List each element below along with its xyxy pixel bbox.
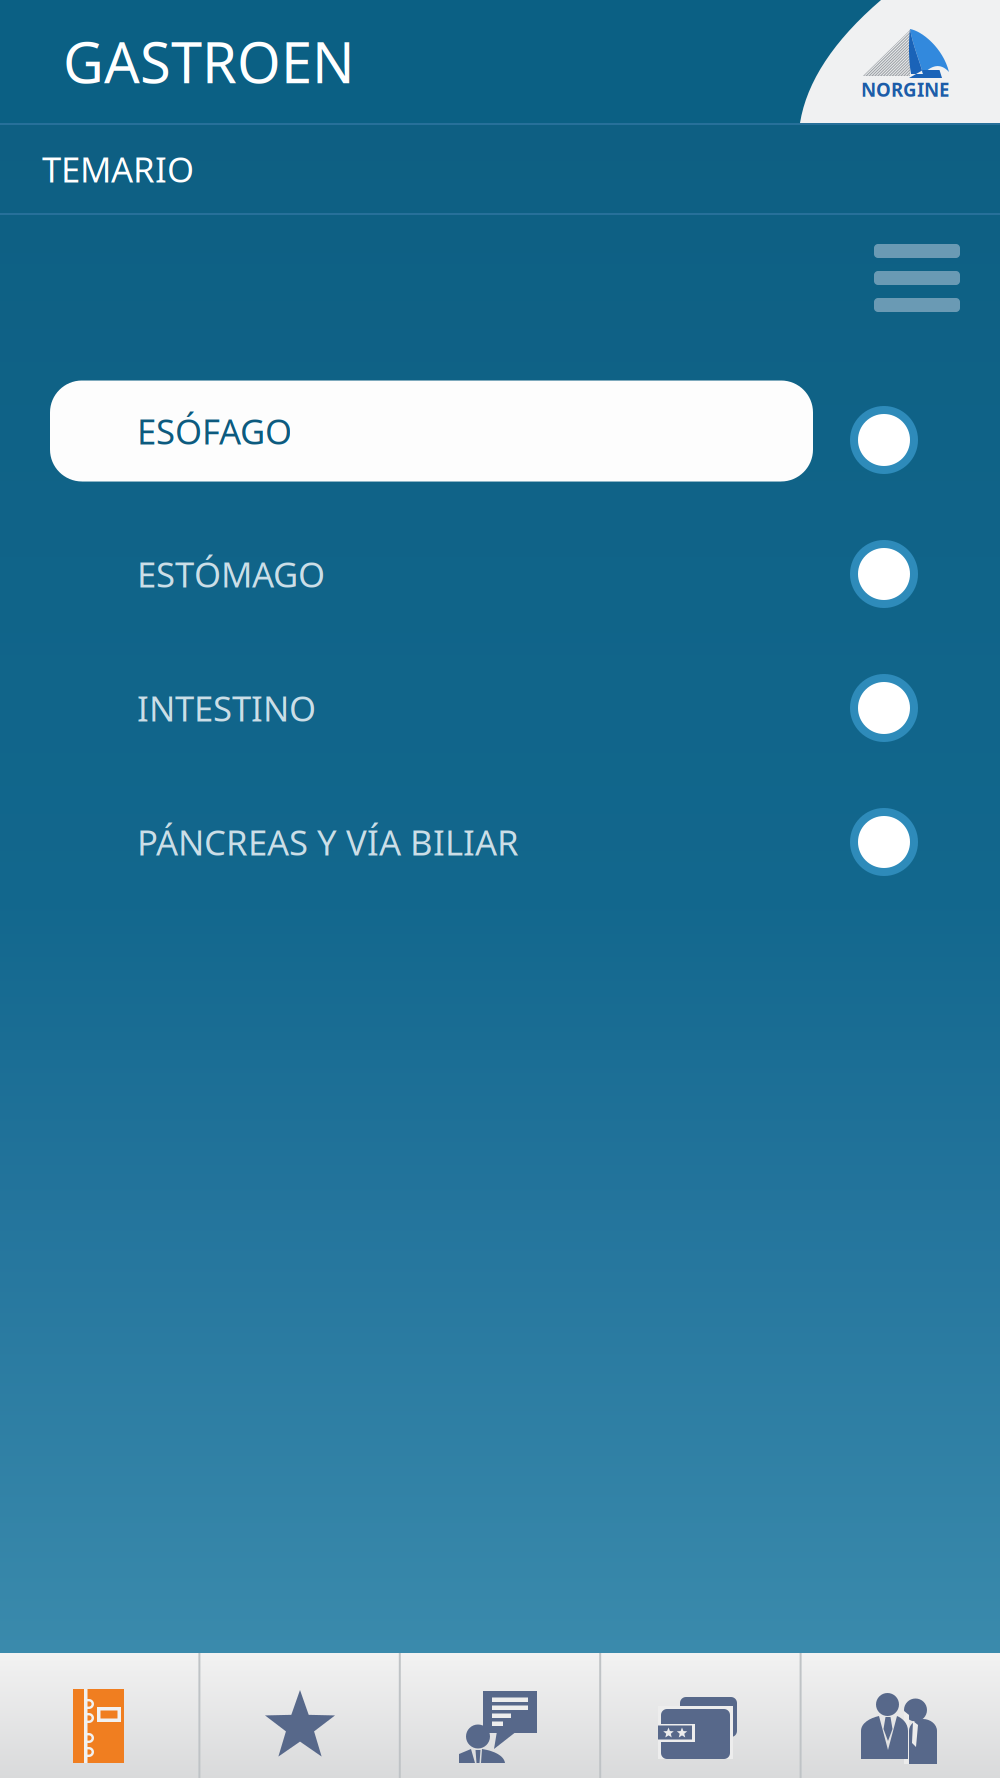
button[interactable]: ESÓFAGO (0, 373, 1000, 507)
button[interactable]: Temario (0, 1653, 200, 1778)
button[interactable]: Contactos (800, 1653, 1000, 1778)
button[interactable]: Tarjetas (600, 1653, 800, 1778)
button[interactable]: Favoritos (200, 1653, 400, 1778)
staticText: ESÓFAGO (137, 408, 292, 454)
staticText: NORGINE (861, 77, 949, 102)
staticText: PÁNCREAS Y VÍA BILIAR (137, 819, 519, 865)
button[interactable]: ESTÓMAGO (0, 507, 1000, 641)
staticText: ESTÓMAGO (137, 551, 325, 597)
button[interactable]: INTESTINO (0, 641, 1000, 775)
button[interactable]: Casos clínicos (400, 1653, 600, 1778)
staticText: TEMARIO (42, 146, 194, 192)
button[interactable]: PÁNCREAS Y VÍA BILIAR (0, 775, 1000, 909)
staticText: GASTROEN (63, 24, 355, 99)
button[interactable]: Menu (854, 230, 980, 326)
staticText: INTESTINO (137, 685, 316, 731)
